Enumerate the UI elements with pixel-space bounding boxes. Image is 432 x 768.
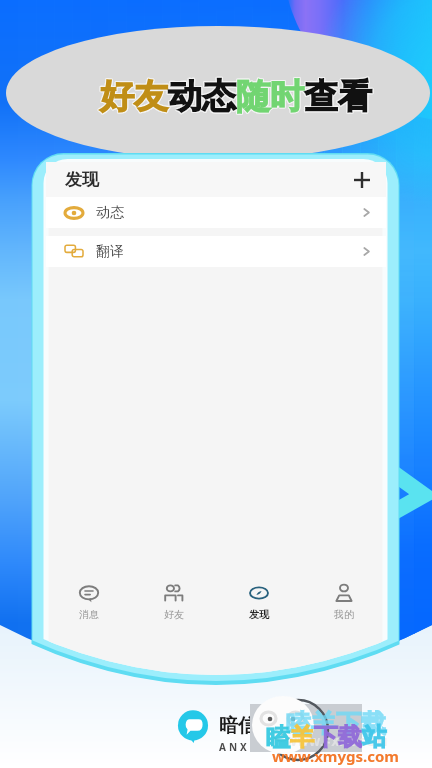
staticText: 好友 [100, 75, 168, 118]
staticText: 动态 [96, 204, 124, 222]
staticText: 瞌羊下载 [286, 708, 386, 739]
button[interactable]: 动态 [46, 197, 386, 228]
staticText: 好友 [164, 608, 184, 621]
staticText: 站 [362, 722, 386, 752]
staticText: WWW.FXXZ.COM [286, 734, 389, 749]
staticText: 随时 [236, 75, 304, 118]
staticText: 动态 [168, 75, 236, 118]
button[interactable]: 发现 [216, 577, 301, 627]
staticText: ANX [219, 740, 250, 754]
button[interactable]: 我的 [301, 577, 386, 627]
staticText: 发现 [65, 169, 99, 190]
button[interactable]: 消息 [46, 577, 131, 627]
staticText: 发现 [249, 608, 269, 621]
staticText: 下载 [314, 722, 362, 752]
staticText: 暗信 [219, 714, 257, 738]
staticText: 羊 [290, 722, 314, 752]
staticText: 好友 [100, 75, 168, 118]
button[interactable]: 好友 [131, 577, 216, 627]
staticText: 查看 [304, 75, 372, 118]
staticText: 我的 [334, 608, 354, 621]
staticText: 随时 [236, 75, 304, 118]
staticText: 查看 [304, 75, 372, 118]
staticText: 翻译 [96, 243, 124, 261]
staticText: 瞌 [266, 722, 290, 752]
button[interactable]: Add [351, 169, 373, 191]
staticText: 动态 [168, 75, 236, 118]
button[interactable]: 翻译 [46, 236, 386, 267]
staticText: 消息 [79, 608, 99, 621]
staticText: www.xmygs.com [272, 746, 399, 766]
